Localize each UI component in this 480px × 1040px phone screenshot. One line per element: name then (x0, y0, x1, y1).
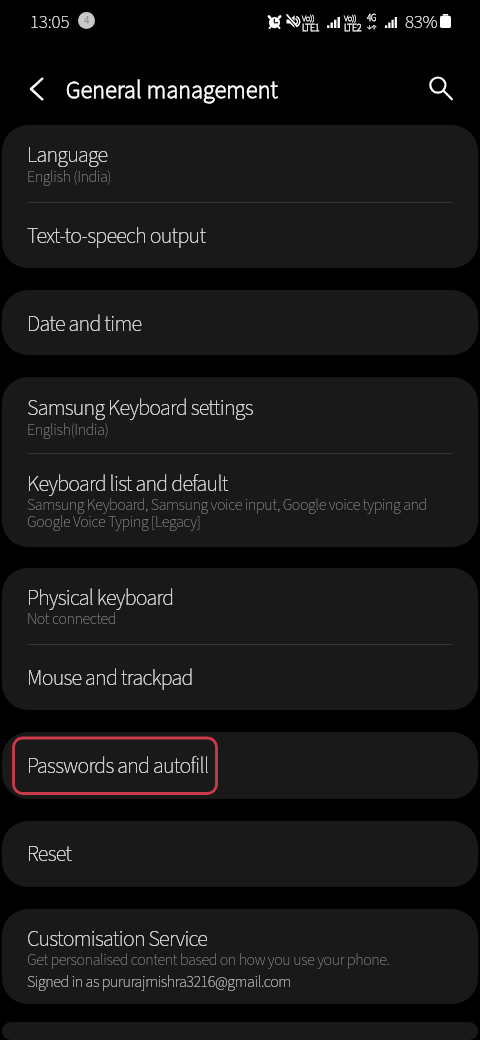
staticText: Samsung Keyboard, Samsung voice input, G… (27, 494, 450, 533)
staticText: Language (27, 139, 108, 170)
staticText: Keyboard list and default (27, 468, 228, 499)
staticText: Date and time (27, 308, 142, 339)
staticText: English(India) (27, 419, 109, 442)
staticText: LTE2 (344, 21, 362, 35)
staticText: LTE1 (302, 21, 320, 35)
staticText: 4G (367, 12, 377, 25)
staticText: Samsung Keyboard settings (27, 392, 253, 423)
button[interactable]: Reset (2, 821, 478, 887)
button[interactable]: Back (14, 66, 60, 112)
button[interactable]: Keyboard list and default (2, 454, 478, 547)
staticText: Not connected (27, 608, 117, 631)
staticText: Vo)) (344, 12, 357, 24)
staticText: Mouse and trackpad (27, 662, 193, 693)
button[interactable]: Language (2, 125, 478, 202)
button[interactable]: Passwords and autofill (2, 732, 478, 799)
button[interactable]: Customisation Service (2, 909, 478, 1004)
button[interactable]: Text-to-speech output (2, 203, 478, 268)
staticText: Get personalised content based on how yo… (27, 949, 390, 972)
staticText: Physical keyboard (27, 582, 174, 613)
staticText: Signed in as pururajmishra3216@gmail.com (27, 971, 291, 994)
staticText: Vo)) (302, 12, 315, 24)
staticText: 13:05 (30, 9, 70, 36)
staticText: 4 (84, 12, 90, 29)
staticText: Customisation Service (27, 923, 208, 954)
button[interactable]: Physical keyboard (2, 568, 478, 644)
button[interactable]: Search (419, 67, 463, 111)
staticText: 83% (405, 9, 438, 36)
staticText: General management (66, 73, 279, 107)
staticText: Text-to-speech output (27, 220, 206, 251)
button[interactable]: Date and time (2, 290, 478, 355)
button[interactable]: Samsung Keyboard settings (2, 377, 478, 453)
staticText: Reset (27, 838, 72, 869)
button[interactable]: Mouse and trackpad (2, 645, 478, 710)
staticText: ↓↑ (367, 21, 377, 32)
staticText: Passwords and autofill (27, 750, 209, 781)
staticText: English (India) (27, 166, 112, 189)
